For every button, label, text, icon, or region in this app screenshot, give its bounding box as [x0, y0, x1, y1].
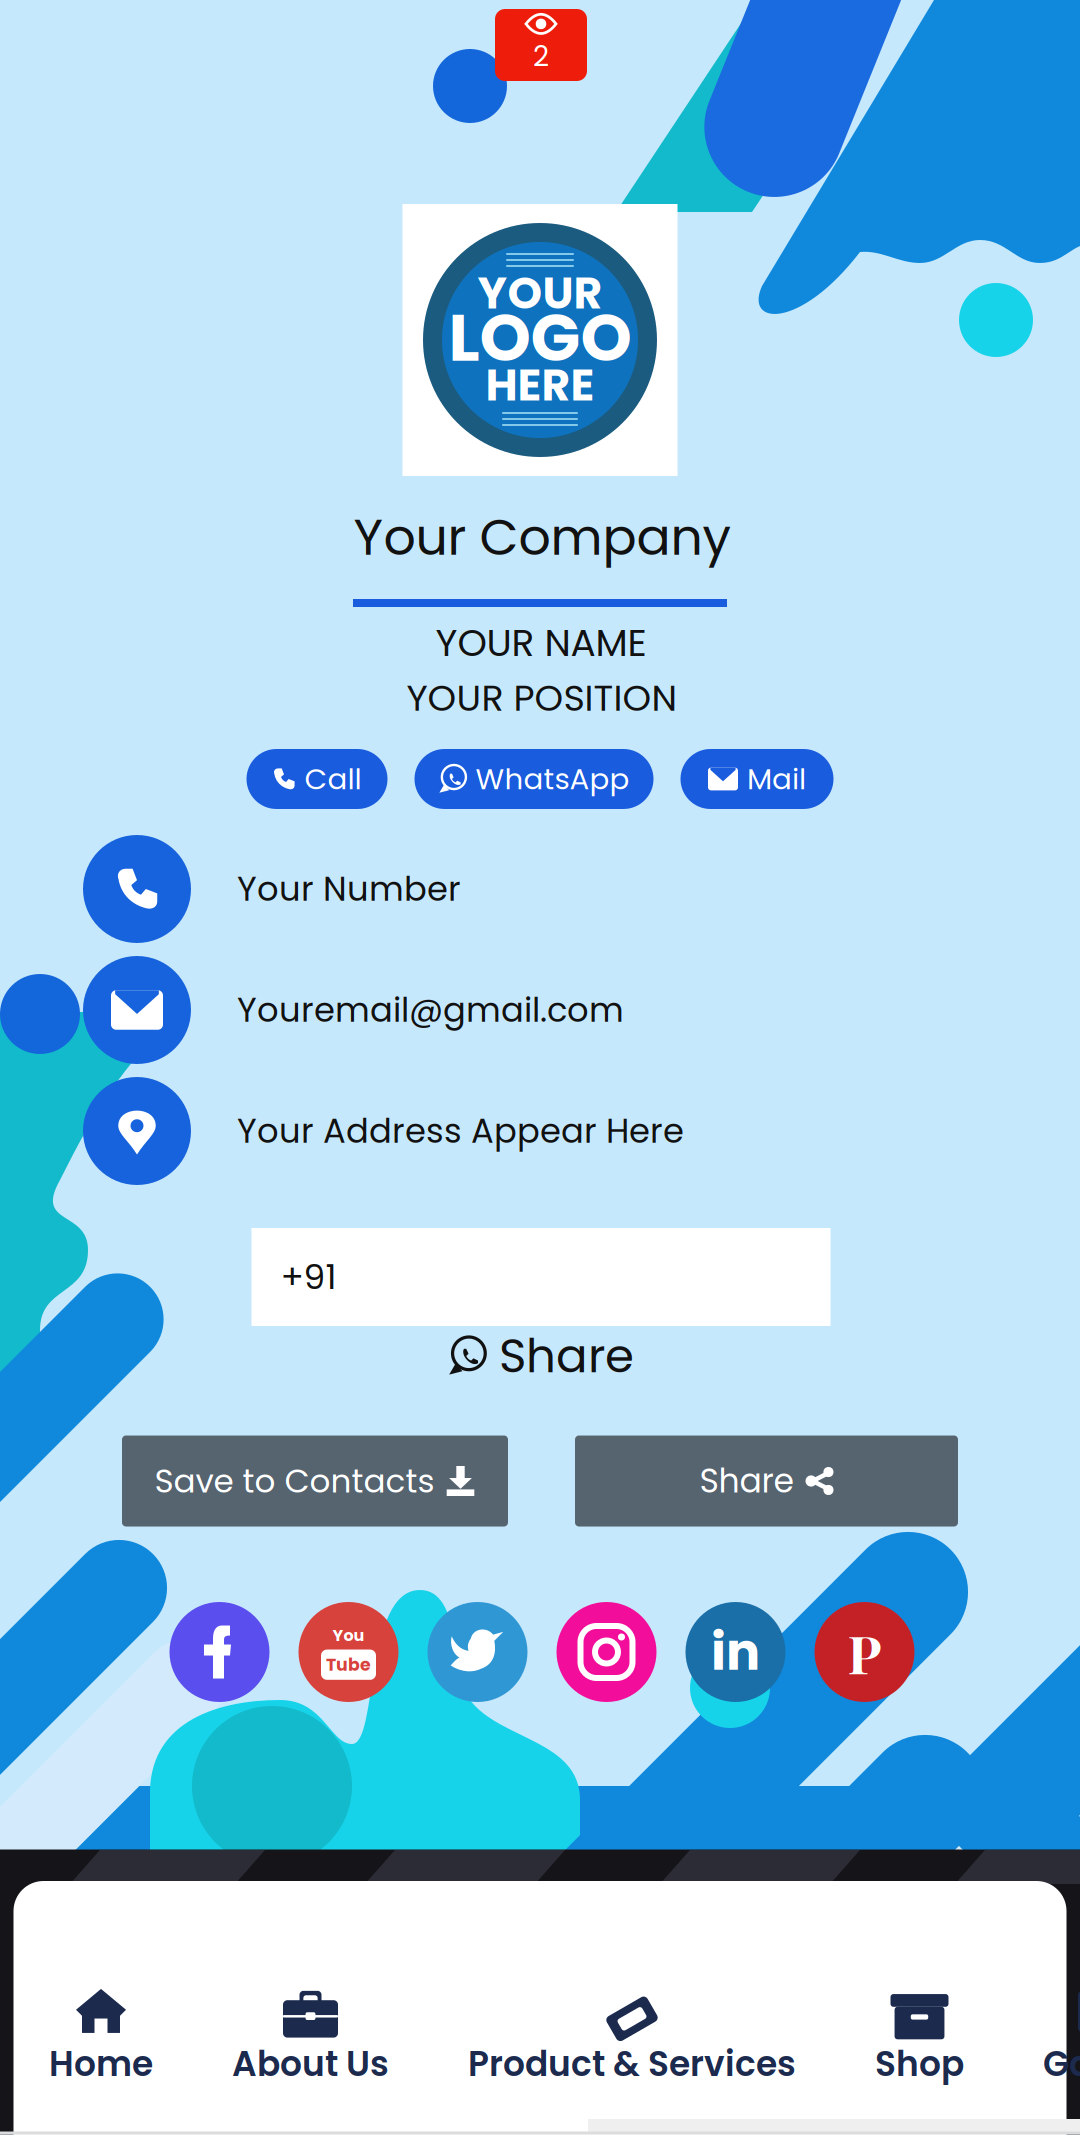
button[interactable]: Your Address Appear Here — [83, 1077, 1003, 1185]
button[interactable]: Shop — [875, 1986, 964, 2088]
staticText: Your Address Appear Here — [237, 1107, 684, 1155]
staticText: Home — [49, 2040, 153, 2088]
staticText: About Us — [232, 2040, 389, 2088]
staticText: YOUR NAME — [435, 617, 646, 669]
button[interactable]: Product & Services — [468, 1986, 796, 2088]
staticText: +91 — [280, 1253, 336, 1301]
staticText: Your Number — [237, 865, 461, 913]
button[interactable]: Mail — [680, 749, 833, 809]
staticText: You — [332, 1624, 364, 1647]
staticText: Share — [499, 1323, 634, 1389]
staticText: Youremail@gmail.com — [237, 986, 624, 1034]
staticText: HERE — [485, 354, 594, 416]
staticText: Share — [699, 1458, 794, 1504]
staticText: Save to Contacts — [154, 1458, 434, 1504]
staticText: 2 — [533, 36, 549, 76]
staticText: Shop — [875, 2040, 964, 2088]
staticText: WhatsApp — [475, 758, 629, 800]
staticText: Product & Services — [468, 2040, 796, 2088]
button[interactable]: Instagram — [556, 1602, 656, 1702]
button[interactable]: Views — [495, 9, 587, 81]
button[interactable]: Gallery — [1043, 1986, 1080, 2088]
staticText: Tube — [326, 1653, 371, 1677]
button[interactable]: Pinterest — [814, 1602, 914, 1702]
button[interactable]: LinkedIn — [685, 1602, 785, 1702]
staticText: Mail — [747, 758, 806, 800]
button[interactable]: Facebook — [169, 1602, 269, 1702]
button[interactable]: Youremail@gmail.com — [83, 956, 1003, 1064]
button[interactable]: Call — [246, 749, 387, 809]
staticText: P — [847, 1616, 881, 1688]
staticText: YOUR POSITION — [406, 672, 677, 723]
staticText: Your Company — [353, 502, 730, 572]
button[interactable]: WhatsApp — [414, 749, 653, 809]
button[interactable]: YouTube — [298, 1602, 398, 1702]
staticText: in — [711, 1616, 760, 1687]
staticText: Call — [304, 758, 361, 800]
button[interactable]: Twitter — [427, 1602, 527, 1702]
button[interactable]: Share — [575, 1435, 958, 1526]
staticText: LOGO — [448, 292, 631, 384]
staticText: YOUR — [477, 262, 602, 324]
button[interactable]: Save to Contacts — [122, 1435, 508, 1526]
button[interactable]: Share — [448, 1323, 634, 1389]
button[interactable]: Your Number — [83, 835, 1003, 943]
button[interactable]: Home — [49, 1986, 153, 2088]
staticText: Gallery — [1043, 2040, 1080, 2088]
button[interactable]: About Us — [232, 1986, 389, 2088]
